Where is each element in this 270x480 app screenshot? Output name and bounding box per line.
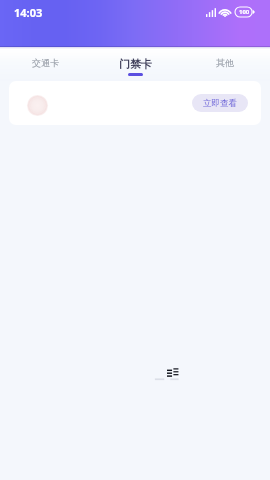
button[interactable]: 立即查看 xyxy=(9,81,261,125)
staticText: 交通卡 xyxy=(32,57,59,68)
button[interactable]: 门禁卡 xyxy=(90,47,180,76)
staticText: 门禁卡 xyxy=(119,57,152,71)
staticText: 100 xyxy=(239,8,250,16)
button[interactable]: 其他 xyxy=(180,47,270,68)
staticText: 14:03 xyxy=(14,5,43,20)
staticText: 立即查看 xyxy=(203,98,237,109)
button[interactable]: 交通卡 xyxy=(0,47,90,68)
staticText: 其他 xyxy=(216,57,234,68)
button[interactable]: Menu xyxy=(167,368,178,381)
button[interactable]: 立即查看 xyxy=(192,94,248,112)
